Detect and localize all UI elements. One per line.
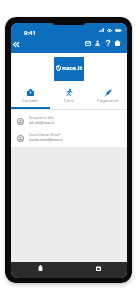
staticText: Scuola Nomar Mirad°°: [29, 133, 62, 137]
button[interactable]: Profile: [94, 39, 101, 47]
button[interactable]: Help: [104, 39, 111, 47]
staticText: Pagamenti: [97, 98, 119, 104]
staticText: scuola.nomir@nace.it: [29, 137, 63, 141]
staticText: mk.villa@nace.it: [29, 120, 55, 124]
button[interactable]: Company: [11, 262, 69, 278]
button[interactable]: Contatti: [11, 82, 49, 113]
button[interactable]: Messages: [84, 39, 91, 47]
staticText: 9:41: [24, 29, 36, 37]
button[interactable]: Back: [11, 40, 20, 49]
button[interactable]: Pagamenti: [88, 82, 127, 113]
staticText: Receptionist Villa: [29, 116, 54, 120]
button[interactable]: Corsi: [49, 82, 88, 113]
staticText: Corsi: [64, 98, 74, 104]
button[interactable]: Home: [114, 39, 121, 47]
staticText: nace.it: [62, 64, 83, 72]
button[interactable]: Scuola Nomar Mirad°°: [11, 130, 127, 147]
button[interactable]: nace.it: [54, 57, 84, 81]
staticText: Contatti: [22, 98, 38, 104]
button[interactable]: Calendar: [69, 262, 127, 278]
button[interactable]: Receptionist Villa: [11, 113, 127, 130]
